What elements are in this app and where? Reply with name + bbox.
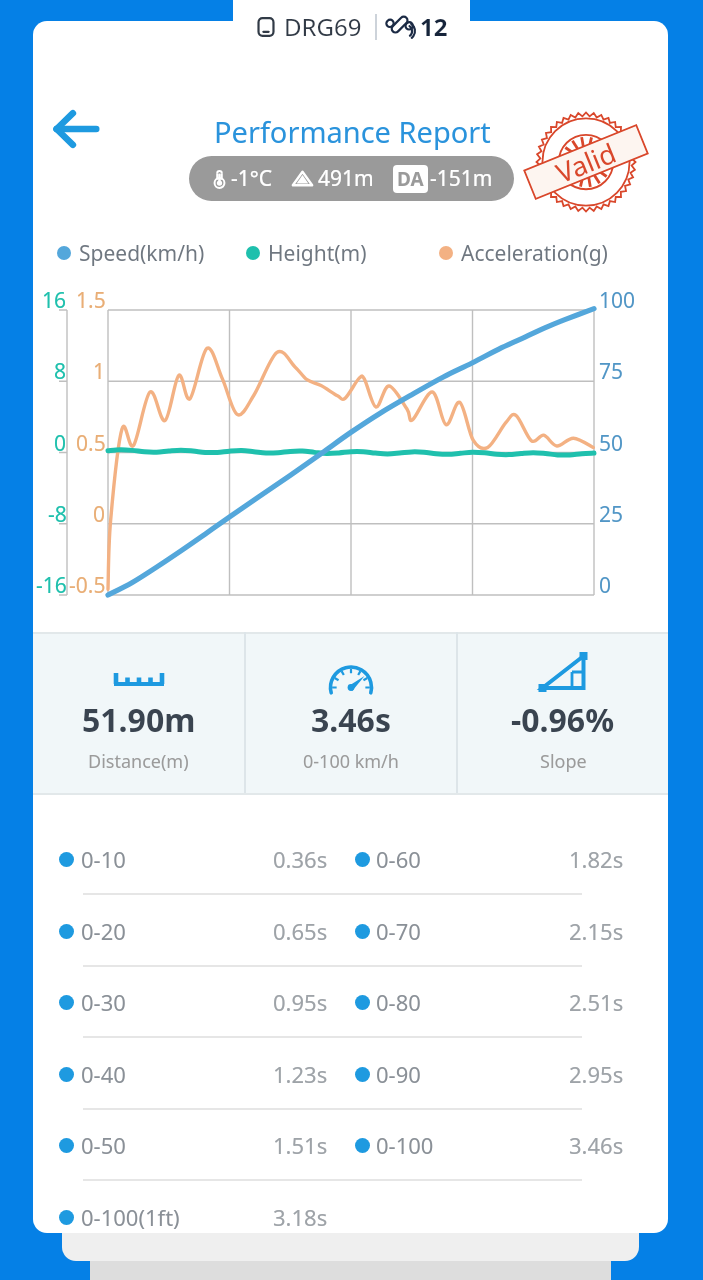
staticText: Distance(m) bbox=[88, 749, 189, 774]
button[interactable]: 0-100(1ft) bbox=[33, 1188, 668, 1233]
staticText: 3.18s bbox=[273, 1202, 328, 1232]
button[interactable]: 0-50 bbox=[33, 1116, 668, 1174]
staticText: Slope bbox=[540, 749, 587, 774]
staticText: 100 bbox=[599, 286, 636, 314]
staticText: 0 bbox=[93, 500, 106, 528]
staticText: 0-40 bbox=[81, 1059, 126, 1089]
staticText: 2.15s bbox=[569, 916, 624, 946]
staticText: DA bbox=[397, 166, 424, 192]
button[interactable]: 0-10 bbox=[33, 830, 668, 888]
staticText: 2.95s bbox=[569, 1059, 624, 1089]
staticText: 3.46s bbox=[311, 698, 391, 742]
button[interactable]: Back bbox=[54, 107, 98, 151]
staticText: 0-30 bbox=[81, 987, 126, 1017]
staticText: Speed(km/h) bbox=[79, 239, 205, 268]
button[interactable]: 3.46s bbox=[246, 632, 456, 795]
staticText: 0-100 bbox=[376, 1130, 434, 1160]
staticText: 0.36s bbox=[273, 844, 328, 874]
staticText: 0 bbox=[599, 571, 612, 599]
button[interactable]: 0-40 bbox=[33, 1045, 668, 1103]
staticText: Acceleration(g) bbox=[461, 239, 608, 268]
staticText: 1.51s bbox=[273, 1130, 328, 1160]
staticText: Height(m) bbox=[268, 239, 367, 268]
staticText: -0.5 bbox=[69, 571, 106, 599]
staticText: 0-70 bbox=[376, 916, 421, 946]
staticText: -8 bbox=[48, 500, 67, 528]
staticText: 25 bbox=[599, 500, 624, 528]
button[interactable]: -0.96% bbox=[458, 632, 668, 795]
staticText: 8 bbox=[54, 357, 67, 385]
staticText: 0 bbox=[54, 429, 67, 457]
staticText: 1.5 bbox=[76, 286, 106, 314]
staticText: -0.96% bbox=[511, 698, 615, 742]
button[interactable]: -1°C bbox=[189, 156, 514, 201]
staticText: 75 bbox=[599, 357, 624, 385]
staticText: 0.65s bbox=[273, 916, 328, 946]
staticText: 0-80 bbox=[376, 987, 421, 1017]
staticText: 0-20 bbox=[81, 916, 126, 946]
staticText: 0-100 km/h bbox=[303, 749, 399, 774]
button[interactable]: 0-30 bbox=[33, 973, 668, 1031]
staticText: -1°C bbox=[231, 164, 273, 193]
staticText: 0-90 bbox=[376, 1059, 421, 1089]
staticText: 51.90m bbox=[82, 698, 196, 742]
staticText: DRG69 bbox=[284, 10, 362, 43]
staticText: 3.46s bbox=[569, 1130, 624, 1160]
staticText: Performance Report bbox=[214, 112, 491, 151]
staticText: 12 bbox=[420, 10, 448, 43]
staticText: 16 bbox=[42, 286, 67, 314]
staticText: 0-10 bbox=[81, 844, 126, 874]
staticText: 0-50 bbox=[81, 1130, 126, 1160]
staticText: -151m bbox=[430, 164, 493, 193]
staticText: 0.5 bbox=[76, 429, 106, 457]
staticText: 0-60 bbox=[376, 844, 421, 874]
staticText: 0.95s bbox=[273, 987, 328, 1017]
staticText: -16 bbox=[36, 571, 67, 599]
staticText: 1.23s bbox=[273, 1059, 328, 1089]
staticText: 1.82s bbox=[569, 844, 624, 874]
staticText: 2.51s bbox=[569, 987, 624, 1017]
button[interactable]: DRG69 bbox=[233, 0, 470, 52]
staticText: Valid bbox=[550, 134, 622, 191]
staticText: 491m bbox=[318, 164, 374, 193]
staticText: 1 bbox=[93, 357, 106, 385]
button[interactable]: 51.90m bbox=[33, 632, 244, 795]
staticText: 50 bbox=[599, 429, 624, 457]
button[interactable]: 0-20 bbox=[33, 902, 668, 960]
staticText: 0-100(1ft) bbox=[81, 1202, 180, 1232]
